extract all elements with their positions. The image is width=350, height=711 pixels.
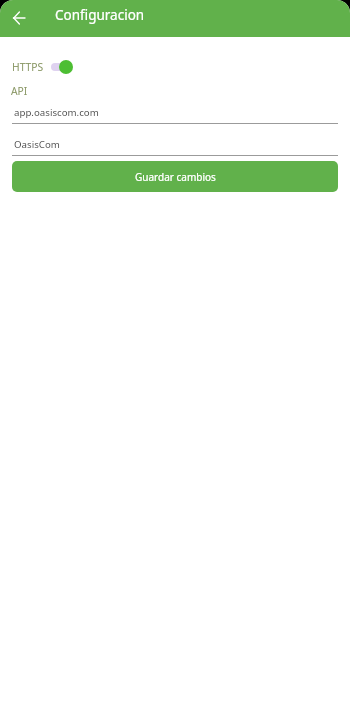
- button[interactable]: app.oasiscom.com: [12, 106, 338, 124]
- button[interactable]: HTTPS toggle: [51, 59, 73, 75]
- staticText: Guardar cambios: [135, 170, 216, 184]
- staticText: API: [11, 84, 28, 98]
- staticText: app.oasiscom.com: [14, 106, 99, 119]
- button[interactable]: Back: [6, 4, 34, 32]
- staticText: OasisCom: [14, 138, 60, 151]
- button[interactable]: Guardar cambios: [12, 161, 338, 192]
- staticText: Configuracion: [55, 6, 145, 24]
- staticText: HTTPS: [12, 60, 44, 74]
- button[interactable]: OasisCom: [12, 138, 338, 156]
